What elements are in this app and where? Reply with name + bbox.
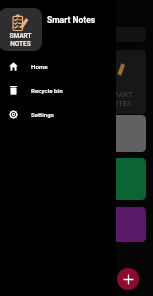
button[interactable]: Ideas <box>7 207 146 242</box>
button[interactable]: Shopping notes <box>7 115 146 152</box>
button[interactable]: Add note <box>117 268 139 290</box>
button[interactable]: Home <box>0 54 116 78</box>
button[interactable]: Work notes important <box>7 158 146 200</box>
staticText: NOTES <box>108 99 132 108</box>
staticText: Smart Notes <box>47 15 96 25</box>
staticText: Recycle bin <box>31 87 63 94</box>
staticText: NOTES <box>10 40 31 48</box>
staticText: Home <box>31 63 48 70</box>
button[interactable]: Search notes <box>7 27 146 42</box>
button[interactable]: Recycle bin <box>0 78 116 102</box>
button[interactable]: Settings <box>0 102 116 126</box>
staticText: SMART <box>107 90 133 99</box>
staticText: Settings <box>31 111 54 118</box>
staticText: SMART <box>9 32 32 40</box>
